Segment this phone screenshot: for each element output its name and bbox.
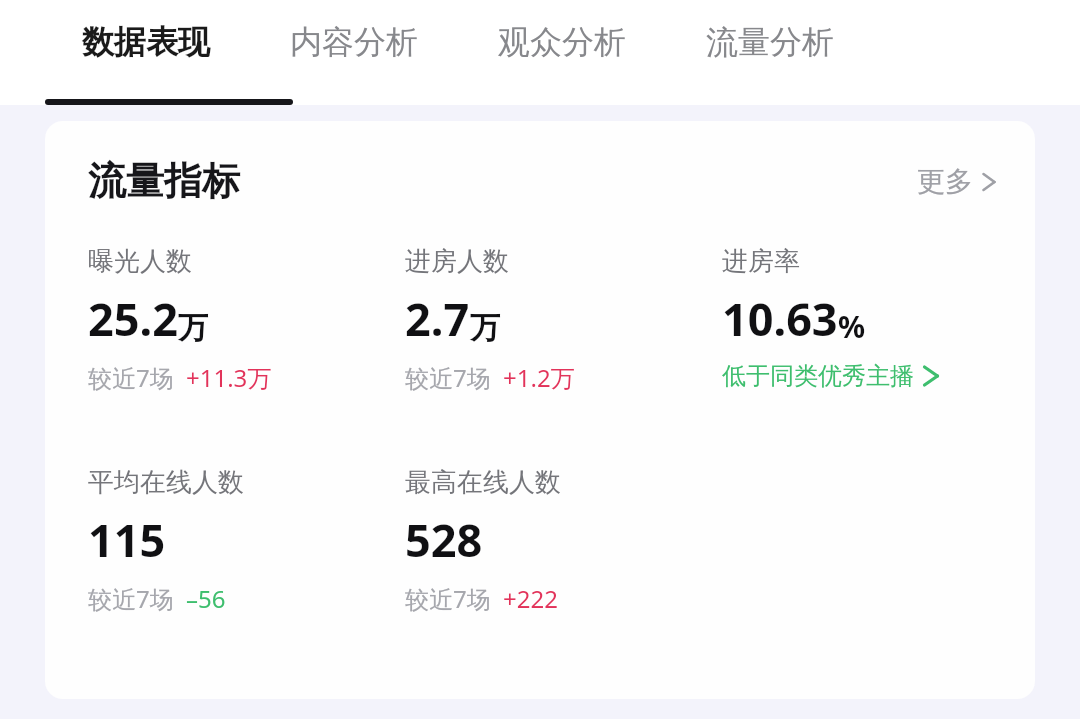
staticText: 115 — [88, 509, 166, 570]
button[interactable]: 更多 — [913, 158, 1005, 205]
staticText: 数据表现 — [82, 22, 210, 62]
staticText: 万 — [178, 309, 208, 347]
staticText: 10.63 — [722, 288, 838, 349]
staticText: 流量指标 — [88, 157, 240, 205]
staticText: +1.2万 — [503, 361, 575, 394]
staticText: 528 — [405, 509, 483, 570]
staticText: 较近7场 — [88, 361, 174, 394]
staticText: 25.2 — [88, 288, 178, 349]
staticText: –56 — [186, 582, 226, 615]
staticText: 2.7 — [405, 288, 470, 349]
staticText: 较近7场 — [88, 582, 174, 615]
button[interactable]: 低于同类优秀主播 — [722, 361, 942, 391]
staticText: 更多 — [917, 164, 973, 199]
staticText: 曝光人数 — [88, 245, 192, 278]
staticText: 进房率 — [722, 245, 800, 278]
staticText: 进房人数 — [405, 245, 509, 278]
other: 更多 — [977, 170, 1001, 194]
staticText: 观众分析 — [498, 22, 626, 62]
staticText: 低于同类优秀主播 — [722, 361, 914, 391]
button[interactable]: 观众分析 — [496, 18, 628, 66]
staticText: % — [838, 306, 866, 347]
staticText: 万 — [470, 309, 500, 347]
staticText: 较近7场 — [405, 582, 491, 615]
staticText: 平均在线人数 — [88, 466, 244, 499]
button[interactable]: 数据表现 — [80, 18, 212, 66]
staticText: 流量分析 — [706, 22, 834, 62]
button[interactable]: 流量分析 — [704, 18, 836, 66]
staticText: 较近7场 — [405, 361, 491, 394]
staticText: +11.3万 — [186, 361, 272, 394]
other: 查看详情 — [920, 365, 942, 387]
staticText: 内容分析 — [290, 22, 418, 62]
staticText: +222 — [503, 582, 558, 615]
staticText: 最高在线人数 — [405, 466, 561, 499]
button[interactable]: 内容分析 — [288, 18, 420, 66]
